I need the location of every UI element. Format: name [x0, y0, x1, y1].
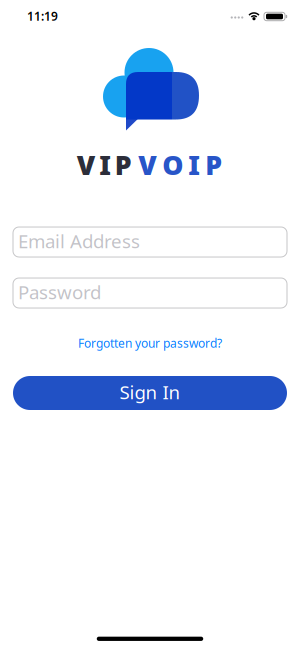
staticText: 11:19	[27, 8, 58, 24]
staticText: O	[162, 147, 183, 182]
staticText: I	[188, 147, 200, 182]
button[interactable]: Password	[13, 278, 287, 308]
staticText: Password	[18, 280, 101, 304]
staticText: Sign In	[119, 380, 180, 404]
staticText: P	[205, 147, 222, 182]
button[interactable]: Email Address	[13, 227, 287, 257]
staticText: I	[99, 147, 111, 182]
staticText: Forgotten your password?	[78, 335, 222, 351]
staticText: V	[138, 147, 157, 182]
button[interactable]: Forgotten your password?	[78, 335, 222, 351]
staticText: Email Address	[18, 229, 140, 253]
button[interactable]: Sign In	[13, 376, 287, 410]
staticText: V	[77, 147, 96, 182]
staticText: P	[115, 147, 132, 182]
